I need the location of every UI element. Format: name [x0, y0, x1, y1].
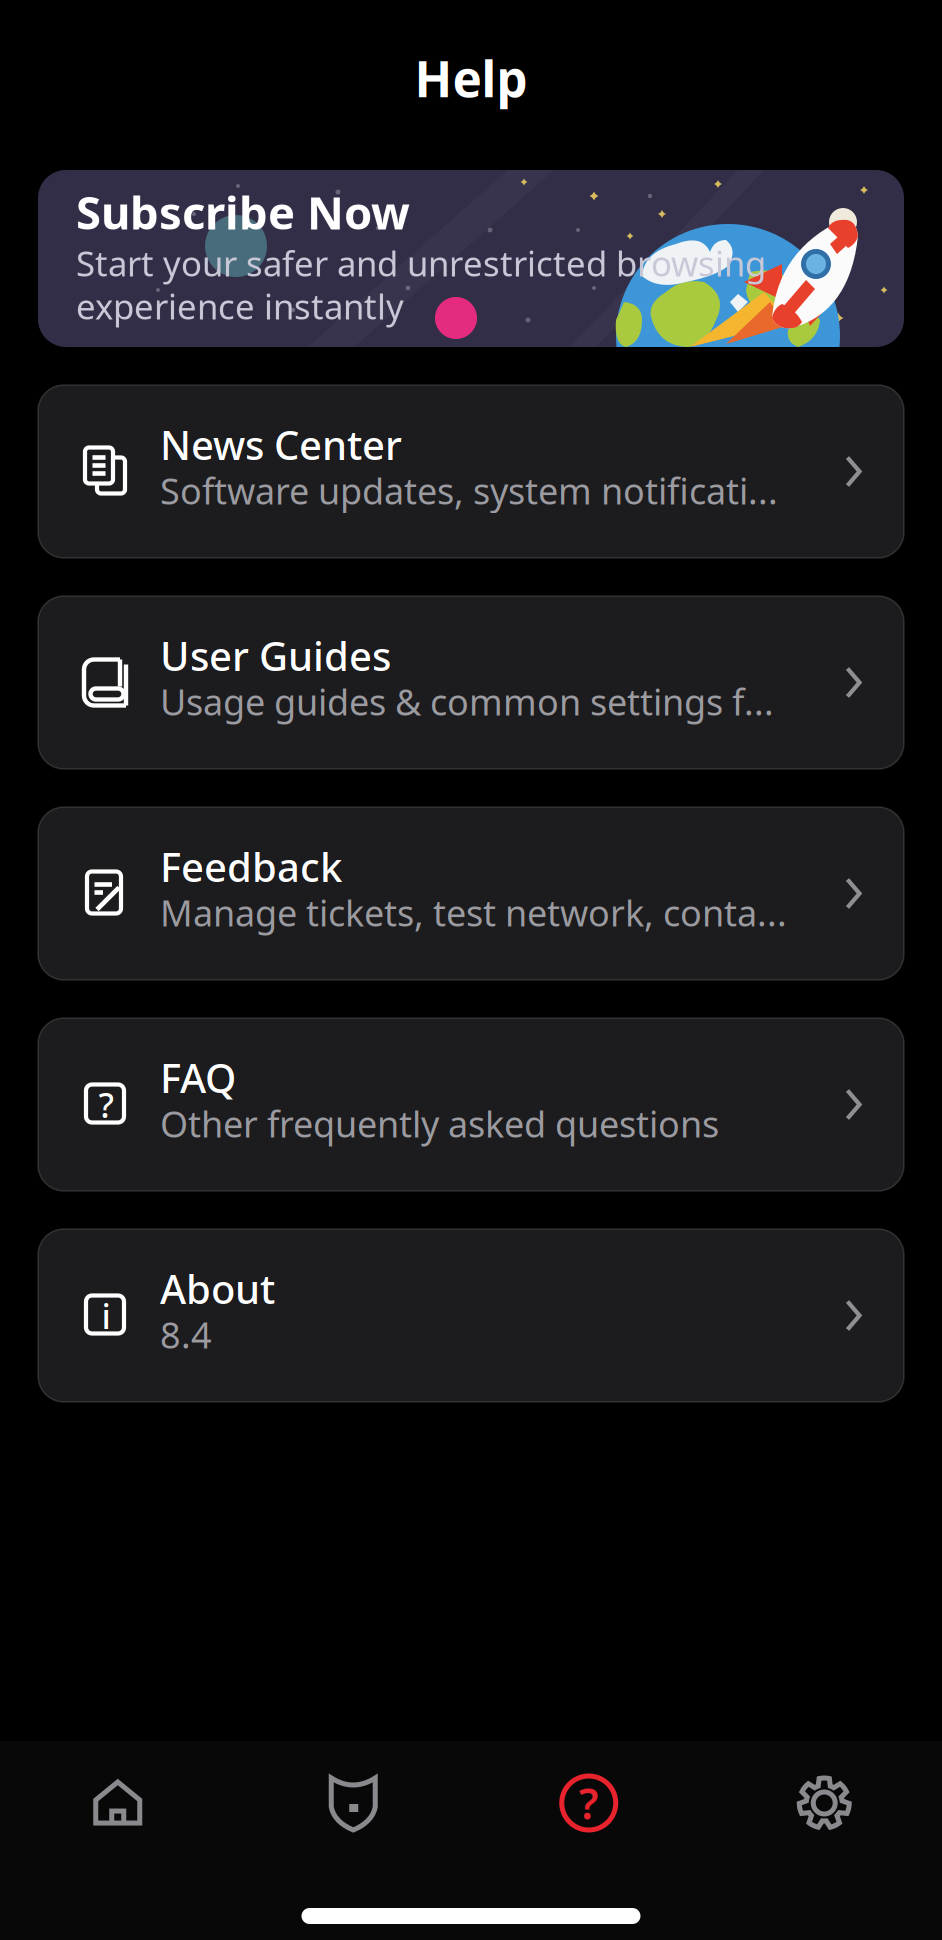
- button[interactable]: Home: [0, 1741, 235, 1865]
- button[interactable]: Help: [471, 1741, 706, 1865]
- staticText: FAQ: [160, 1051, 236, 1104]
- staticText: Feedback: [160, 840, 342, 893]
- staticText: 8.4: [160, 1311, 212, 1358]
- staticText: ?: [98, 1081, 113, 1127]
- staticText: User Guides: [160, 629, 391, 682]
- staticText: Start your safer and unrestricted browsi…: [76, 240, 766, 286]
- staticText: Software updates, system notificati...: [160, 467, 778, 514]
- button[interactable]: News Center: [38, 385, 904, 558]
- button[interactable]: Subscribe Now: [38, 170, 904, 347]
- staticText: About: [160, 1262, 275, 1315]
- button[interactable]: ?: [38, 1018, 904, 1191]
- staticText: i: [101, 1292, 110, 1338]
- staticText: Usage guides & common settings f...: [160, 678, 774, 725]
- staticText: Help: [414, 45, 527, 111]
- staticText: News Center: [160, 418, 402, 471]
- staticText: experience instantly: [76, 283, 404, 329]
- button[interactable]: Feedback: [38, 807, 904, 980]
- staticText: Other frequently asked questions: [160, 1100, 719, 1147]
- button[interactable]: Settings: [706, 1741, 942, 1865]
- button[interactable]: Protection: [235, 1741, 471, 1865]
- staticText: Manage tickets, test network, conta...: [160, 889, 787, 936]
- staticText: ?: [579, 1775, 599, 1831]
- staticText: Subscribe Now: [76, 182, 410, 242]
- button[interactable]: i: [38, 1229, 904, 1402]
- button[interactable]: User Guides: [38, 596, 904, 769]
